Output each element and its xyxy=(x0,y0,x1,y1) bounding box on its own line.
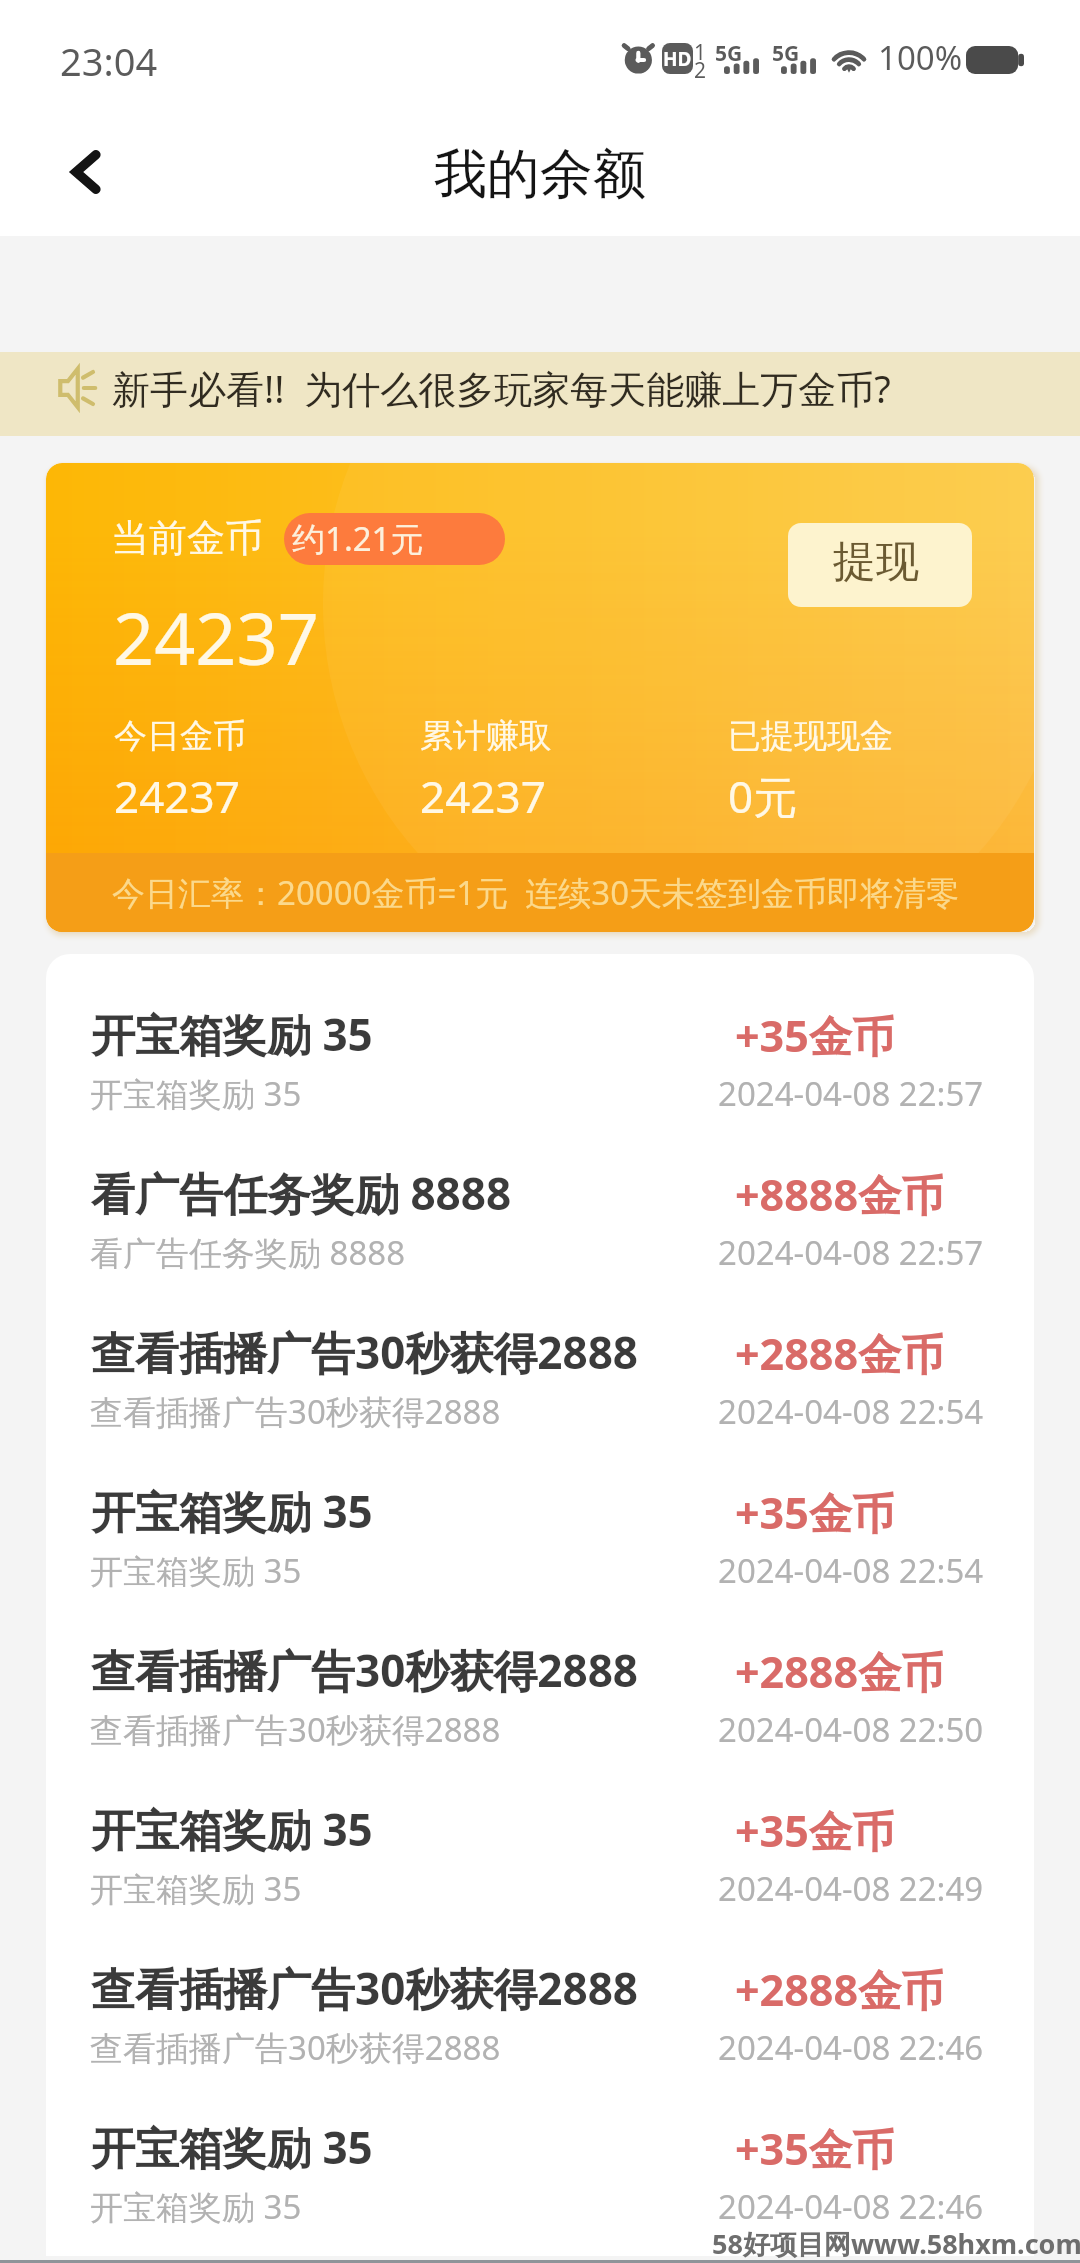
button[interactable]: 开宝箱奖励 35 xyxy=(46,1479,1034,1619)
button[interactable]: 查看插播广告30秒获得2888 xyxy=(46,1638,1034,1778)
staticText: 已提现现金 xyxy=(728,715,893,757)
staticText: 100% xyxy=(878,35,963,80)
staticText: 2024-04-08 22:54 xyxy=(718,1389,984,1434)
staticText: +35金币 xyxy=(735,1801,895,1860)
staticText: 我的余额 xyxy=(434,141,646,208)
staticText: 开宝箱奖励 35 xyxy=(90,1071,302,1116)
staticText: 查看插播广告30秒获得2888 xyxy=(90,1707,501,1752)
staticText: 查看插播广告30秒获得2888 xyxy=(90,2025,501,2070)
staticText: 查看插播广告30秒获得2888 xyxy=(91,1640,639,1700)
staticText: 开宝箱奖励 35 xyxy=(91,1799,373,1859)
staticText: +35金币 xyxy=(735,1483,895,1542)
button[interactable]: 开宝箱奖励 35 xyxy=(46,2115,1034,2255)
button[interactable]: 开宝箱奖励 35 xyxy=(46,1002,1034,1142)
staticText: 2024-04-08 22:46 xyxy=(718,2025,984,2070)
staticText: +35金币 xyxy=(735,2119,895,2178)
staticText: 5G xyxy=(772,39,800,68)
button[interactable]: 查看插播广告30秒获得2888 xyxy=(46,1320,1034,1460)
staticText: 查看插播广告30秒获得2888 xyxy=(91,1958,639,2018)
staticText: 2024-04-08 22:57 xyxy=(718,1071,984,1116)
staticText: 查看插播广告30秒获得2888 xyxy=(90,1389,501,1434)
button[interactable]: 查看插播广告30秒获得2888 xyxy=(46,1956,1034,2096)
staticText: 5G xyxy=(715,39,743,68)
button[interactable]: 开宝箱奖励 35 xyxy=(46,1797,1034,1937)
staticText: 24237 xyxy=(113,588,319,686)
staticText: 开宝箱奖励 35 xyxy=(91,1004,373,1064)
staticText: HD xyxy=(663,46,692,72)
staticText: 累计赚取 xyxy=(420,715,552,757)
staticText: 58好项目网www.58hxm.com xyxy=(712,2225,1080,2262)
staticText: 当前金币 xyxy=(111,514,263,562)
staticText: 新手必看!! 为什么很多玩家每天能赚上万金币? xyxy=(112,362,891,414)
staticText: 开宝箱奖励 35 xyxy=(90,1866,302,1911)
button[interactable]: 看广告任务奖励 8888 xyxy=(46,1161,1034,1301)
button[interactable]: Back xyxy=(54,140,118,204)
staticText: 开宝箱奖励 35 xyxy=(91,1481,373,1541)
staticText: 2024-04-08 22:50 xyxy=(718,1707,984,1752)
staticText: 开宝箱奖励 35 xyxy=(90,1548,302,1593)
staticText: +8888金币 xyxy=(735,1165,944,1224)
staticText: 约1.21元 xyxy=(292,516,424,561)
staticText: +2888金币 xyxy=(735,1642,944,1701)
staticText: 开宝箱奖励 35 xyxy=(91,2117,373,2177)
staticText: 0元 xyxy=(728,766,798,826)
staticText: +35金币 xyxy=(735,1006,895,1065)
staticText: 2024-04-08 22:49 xyxy=(718,1866,984,1911)
button[interactable]: 新手必看!! 为什么很多玩家每天能赚上万金币? xyxy=(0,352,1080,436)
staticText: 看广告任务奖励 8888 xyxy=(90,1230,406,1275)
staticText: 23:04 xyxy=(60,35,158,87)
staticText: 24237 xyxy=(420,766,546,826)
staticText: 提现 xyxy=(833,535,919,589)
staticText: 看广告任务奖励 8888 xyxy=(91,1163,512,1223)
staticText: 查看插播广告30秒获得2888 xyxy=(91,1322,639,1382)
staticText: +2888金币 xyxy=(735,1960,944,2019)
staticText: 2024-04-08 22:54 xyxy=(718,1548,984,1593)
button[interactable]: 提现 xyxy=(788,523,972,607)
staticText: 今日金币 xyxy=(114,715,246,757)
staticText: 2 xyxy=(694,56,707,85)
staticText: 1 xyxy=(694,38,707,67)
staticText: 2024-04-08 22:46 xyxy=(718,2184,984,2229)
staticText: 2024-04-08 22:57 xyxy=(718,1230,984,1275)
staticText: +2888金币 xyxy=(735,1324,944,1383)
staticText: 开宝箱奖励 35 xyxy=(90,2184,302,2229)
staticText: 24237 xyxy=(114,766,240,826)
staticText: 今日汇率：20000金币=1元 连续30天未签到金币即将清零 xyxy=(112,870,960,915)
